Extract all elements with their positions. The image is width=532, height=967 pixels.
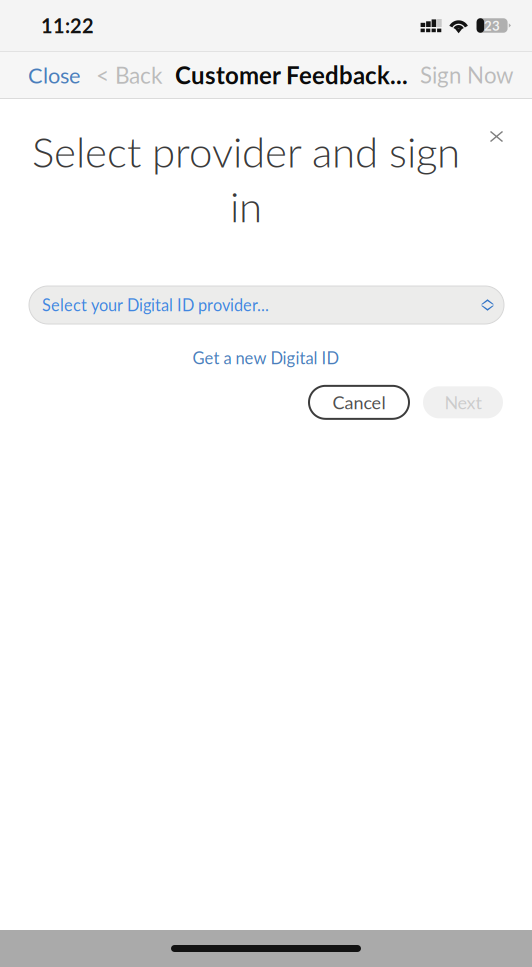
staticText: Get a new Digital ID	[192, 348, 339, 368]
staticText: Cancel	[332, 391, 385, 413]
staticText: 11:22	[41, 13, 94, 37]
staticText: Close	[28, 62, 80, 88]
staticText: Next	[444, 391, 481, 413]
button[interactable]: Get a new Digital ID	[192, 348, 339, 368]
staticText: Select your Digital ID provider...	[42, 295, 269, 315]
staticText: Sign Now	[420, 62, 513, 88]
button[interactable]: Cancel	[309, 386, 409, 419]
staticText: in	[230, 181, 262, 231]
button[interactable]: Sign Now	[420, 62, 513, 88]
button[interactable]: Select your Digital ID provider...	[29, 286, 504, 324]
button[interactable]: < Back	[96, 61, 163, 89]
staticText: Customer Feedback...	[175, 61, 408, 89]
staticText: Select provider and sign	[32, 126, 460, 176]
button[interactable]: Close	[28, 62, 80, 88]
button[interactable]: Next	[423, 386, 503, 418]
staticText: < Back	[96, 61, 163, 89]
staticText: 23	[484, 17, 500, 33]
button[interactable]: Close	[490, 131, 503, 142]
